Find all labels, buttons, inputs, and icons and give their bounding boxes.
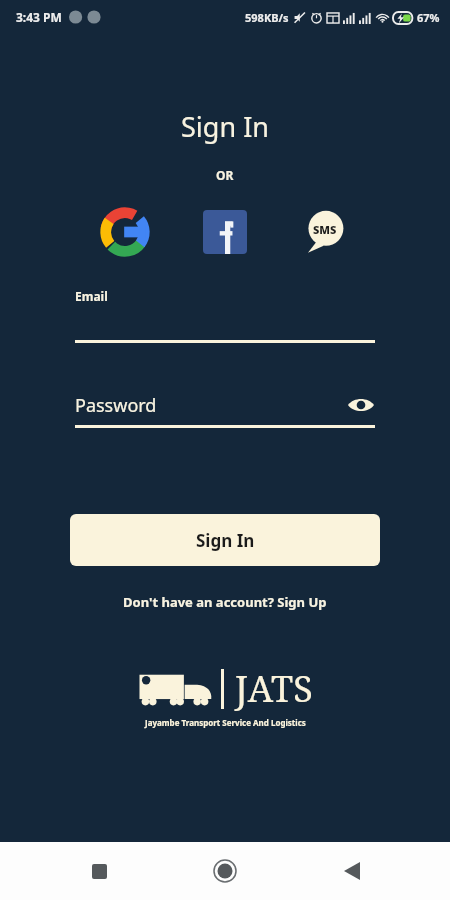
staticText: 3:43 PM [16,9,62,25]
staticText: JATS [235,664,313,713]
staticText: SMS [313,222,337,237]
button[interactable]: Sign in with SMS [297,204,353,260]
button[interactable]: Show password [347,391,375,419]
staticText: Sign In [181,108,269,145]
staticText: 67% [417,10,440,25]
button[interactable]: Back [324,843,380,899]
button[interactable]: Sign in with Facebook [197,204,253,260]
button[interactable]: Home [197,843,253,899]
button[interactable]: Password [75,391,375,419]
staticText: Email [75,288,108,304]
button[interactable]: Don't have an account? Sign Up [115,590,335,614]
staticText: Sign In [196,529,255,552]
button[interactable]: Recent apps [71,843,127,899]
staticText: Jayambe Transport Service And Logistics [145,717,306,728]
staticText: 598KB/s [245,10,289,25]
staticText: Don't have an account? Sign Up [123,593,327,611]
staticText: OR [216,167,234,183]
button[interactable]: Sign In [70,514,380,566]
button[interactable]: Sign in with Google [97,204,153,260]
staticText: Password [75,393,157,418]
